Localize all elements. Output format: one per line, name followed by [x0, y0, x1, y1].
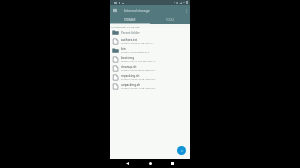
- staticText: bin: [121, 47, 126, 51]
- staticText: 27/06/17 03:40 905 B -rwxr-xr-x: [121, 69, 155, 72]
- staticText: 27/06/17 03:40 drwxr-xr-x: [121, 51, 149, 54]
- staticText: boot.img: [121, 56, 135, 60]
- staticText: cleanup.sh: [121, 65, 137, 69]
- staticText: repacking.sh: [121, 74, 140, 78]
- staticText: 26/06/17 07:12 10.8 MB -rw-r--r--: [121, 60, 157, 63]
- button[interactable]: authors.txt: [110, 37, 190, 46]
- button[interactable]: Back: [123, 159, 132, 168]
- button[interactable]: boot.img: [110, 55, 190, 64]
- staticText: 27/06/17 03:40 1.4 kB -rwxr-xr-x: [121, 87, 156, 90]
- staticText: unpacking.sh: [121, 83, 141, 87]
- button[interactable]: Parent folder: [110, 28, 190, 37]
- button[interactable]: STORAGE: [110, 16, 150, 24]
- staticText: 27/06/17 03:40 1.6 kB -rwxr-xr-x: [121, 78, 156, 81]
- button[interactable]: More options: [183, 5, 190, 16]
- button[interactable]: TOOLS: [150, 16, 190, 24]
- button[interactable]: Recents: [168, 159, 177, 168]
- staticText: 14.6 GB used, 3.5 GB free: [111, 25, 140, 28]
- button[interactable]: cleanup.sh: [110, 64, 190, 73]
- staticText: authors.txt: [121, 38, 137, 42]
- button[interactable]: bin: [110, 46, 190, 55]
- staticText: 27/06/17 03:40 8.1 kB -rw-r--r--: [121, 42, 154, 45]
- staticText: TOOLS: [166, 18, 175, 22]
- button[interactable]: repacking.sh: [110, 73, 190, 82]
- button[interactable]: Add: [177, 146, 186, 155]
- button[interactable]: Menu: [110, 5, 119, 16]
- button[interactable]: Home: [146, 159, 155, 168]
- staticText: Internal storage: [124, 8, 150, 13]
- staticText: STORAGE: [124, 18, 136, 22]
- staticText: Parent folder: [121, 31, 140, 35]
- button[interactable]: unpacking.sh: [110, 82, 190, 91]
